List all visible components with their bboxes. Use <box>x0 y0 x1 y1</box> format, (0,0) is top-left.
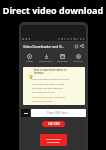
staticText: BROWSER <box>57 60 68 63</box>
button[interactable]: HOME <box>21 52 38 63</box>
button[interactable]: SETTING <box>70 52 86 63</box>
button[interactable]: BROWSER <box>54 52 70 63</box>
button[interactable]: DOWNLOAD <box>38 52 54 63</box>
button[interactable]: Paste URL Here... <box>31 109 86 117</box>
staticText: Direct video download <box>0 4 106 16</box>
staticText: Learn with Browser or Download with past… <box>32 96 66 102</box>
staticText: Paste URL Here... <box>47 111 70 115</box>
button[interactable]: Paste <box>21 109 30 117</box>
button[interactable]: DOWNLOAD BROWSER <box>40 134 67 146</box>
staticText: Click download button <box>32 91 55 94</box>
staticText: How to download videos in browser <box>34 68 67 75</box>
staticText: Video Downloader and Vi.. <box>23 44 64 48</box>
staticText: HOME <box>26 60 33 63</box>
button[interactable]: Favorite <box>73 43 79 49</box>
staticText: Copy and paste the video link in box <box>32 78 69 81</box>
staticText: ADD LINK <box>48 122 60 126</box>
staticText: The browser will open the page, then vid… <box>32 83 65 89</box>
staticText: DOWNLOAD BROWSER <box>46 137 61 143</box>
staticText: SETTING <box>73 60 83 63</box>
staticText: DOWNLOAD <box>39 60 53 63</box>
button[interactable]: ADD LINK <box>42 121 65 127</box>
button[interactable]: Share <box>79 43 85 49</box>
